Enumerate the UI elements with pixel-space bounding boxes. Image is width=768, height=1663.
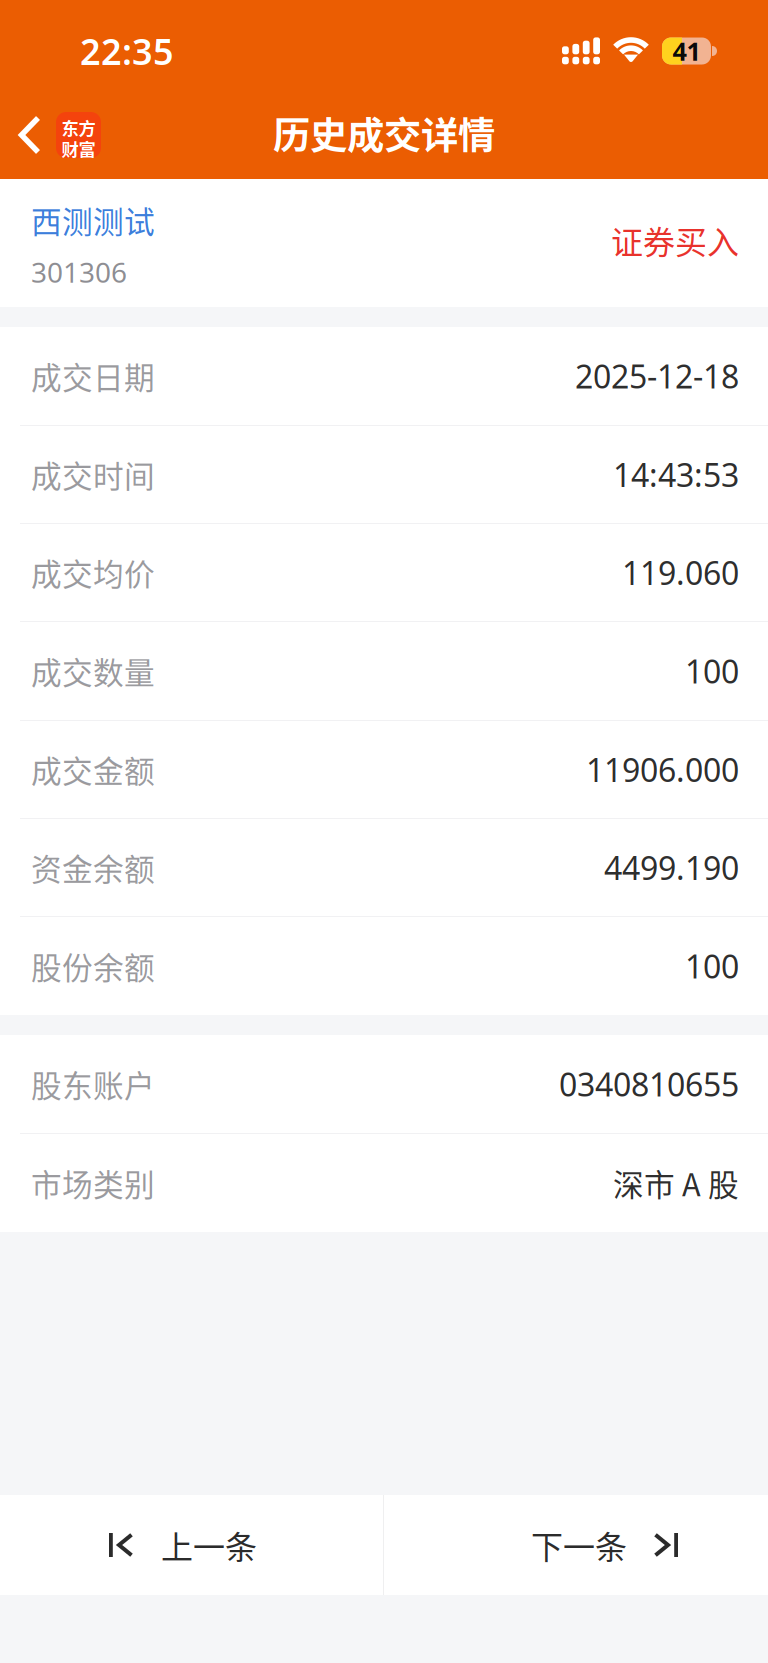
staticText: 100 <box>685 945 739 987</box>
staticText: 成交均价 <box>31 550 155 595</box>
staticText: 100 <box>685 650 739 692</box>
button[interactable]: 返回 <box>0 91 113 179</box>
staticText: 股份余额 <box>31 944 155 988</box>
staticText: 22:35 <box>80 27 174 75</box>
staticText: 深市 A 股 <box>613 1161 739 1205</box>
staticText: 11906.000 <box>586 748 739 791</box>
staticText: 41 <box>672 34 700 68</box>
staticText: 0340810655 <box>559 1063 739 1105</box>
staticText: 历史成交详情 <box>273 106 495 160</box>
staticText: 119.060 <box>622 551 739 594</box>
staticText: 4499.190 <box>604 846 739 889</box>
staticText: 301306 <box>31 253 127 291</box>
staticText: 资金余额 <box>31 845 155 890</box>
staticText: 西测测试 <box>31 198 155 242</box>
staticText: 2025-12-18 <box>575 355 739 397</box>
staticText: 上一条 <box>161 1522 257 1568</box>
button[interactable]: 上一条 <box>0 1495 383 1595</box>
staticText: 股东账户 <box>31 1062 155 1106</box>
staticText: 市场类别 <box>31 1161 155 1205</box>
staticText: 下一条 <box>531 1522 627 1568</box>
staticText: 成交金额 <box>31 747 155 792</box>
staticText: 东方 <box>61 115 95 140</box>
staticText: 14:43:53 <box>613 453 739 496</box>
staticText: 成交日期 <box>31 354 155 398</box>
staticText: 财富 <box>61 136 95 161</box>
staticText: 证券买入 <box>611 217 739 263</box>
button[interactable]: 下一条 <box>384 1495 768 1595</box>
staticText: 成交时间 <box>31 452 155 497</box>
staticText: 成交数量 <box>31 649 155 693</box>
